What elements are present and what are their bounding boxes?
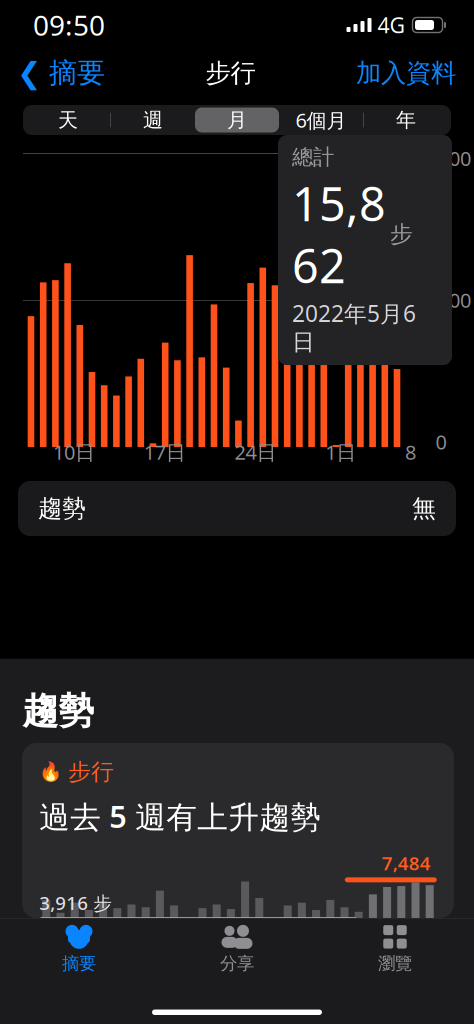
staticText: 3,916 步 bbox=[39, 890, 112, 915]
button[interactable]: 年 bbox=[364, 107, 448, 132]
staticText: 8 bbox=[405, 439, 416, 465]
staticText: 20,000 bbox=[411, 145, 471, 172]
staticText: 年 bbox=[396, 108, 416, 132]
button[interactable]: 週 bbox=[111, 107, 195, 132]
staticText: 1日 bbox=[325, 439, 356, 465]
staticText: 過去 5 週有上升趨勢 bbox=[39, 796, 321, 836]
staticText: 10日 bbox=[53, 439, 95, 465]
button[interactable]: 6個月 bbox=[279, 107, 363, 132]
staticText: 24日 bbox=[234, 439, 276, 465]
button[interactable]: ❮ bbox=[0, 50, 117, 96]
button[interactable]: 月 bbox=[195, 107, 279, 132]
staticText: 趨勢 bbox=[38, 494, 86, 523]
staticText: 10,000 bbox=[411, 287, 471, 313]
staticText: 0 bbox=[435, 428, 446, 455]
staticText: 🔥 bbox=[39, 761, 62, 783]
staticText: 天 bbox=[58, 108, 78, 132]
staticText: 無 bbox=[412, 494, 436, 523]
staticText: 分享 bbox=[220, 953, 254, 974]
button[interactable]: 瀏覽 bbox=[316, 924, 474, 974]
staticText: 摘要 bbox=[49, 56, 105, 90]
button[interactable]: 加入資料 bbox=[344, 50, 474, 96]
button[interactable]: 天 bbox=[26, 107, 110, 132]
staticText: 月 bbox=[227, 108, 247, 132]
staticText: 趨勢 bbox=[22, 689, 94, 733]
staticText: ❮ bbox=[17, 56, 42, 90]
staticText: 瀏覽 bbox=[378, 953, 412, 974]
staticText: 4G bbox=[377, 11, 405, 39]
staticText: 2022年5月6日 bbox=[292, 298, 416, 356]
staticText: 摘要 bbox=[62, 953, 96, 974]
button[interactable]: 🔥 bbox=[0, 733, 474, 918]
button[interactable]: 趨勢 bbox=[0, 465, 474, 536]
staticText: 加入資料 bbox=[356, 57, 456, 88]
staticText: 17日 bbox=[144, 439, 186, 465]
button[interactable]: 摘要 bbox=[0, 924, 158, 974]
staticText: 步 bbox=[390, 220, 413, 248]
staticText: 6個月 bbox=[295, 107, 346, 133]
staticText: 步行 bbox=[68, 758, 114, 786]
staticText: 09:50 bbox=[33, 6, 105, 44]
staticText: 15,862 bbox=[292, 172, 386, 296]
staticText: 步行 bbox=[205, 57, 255, 88]
button[interactable]: 分享 bbox=[158, 924, 316, 974]
staticText: 週 bbox=[143, 108, 163, 132]
staticText: 7,484 bbox=[382, 851, 431, 875]
staticText: 總計 bbox=[292, 144, 334, 170]
